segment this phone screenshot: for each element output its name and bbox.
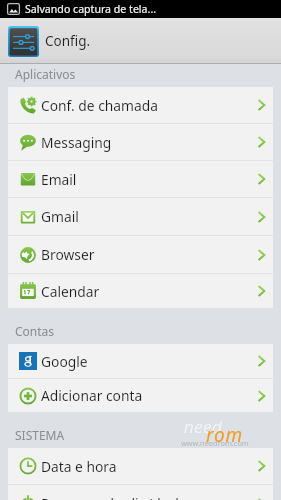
button[interactable]: Email bbox=[8, 161, 273, 197]
button[interactable]: Gmail bbox=[8, 198, 273, 235]
button[interactable]: Google bbox=[8, 344, 273, 378]
staticText: www.needrom.com bbox=[181, 438, 249, 448]
staticText: Messaging bbox=[41, 133, 112, 152]
staticText: need bbox=[184, 415, 223, 438]
button[interactable]: Messaging bbox=[8, 124, 273, 160]
staticText: Google bbox=[41, 352, 88, 371]
staticText: SISTEMA bbox=[15, 427, 65, 443]
staticText: Calendar bbox=[41, 282, 100, 301]
staticText: Adicionar conta bbox=[41, 386, 143, 405]
staticText: rom bbox=[206, 422, 243, 448]
staticText: Aplicativos bbox=[15, 66, 76, 82]
button[interactable]: Data e hora bbox=[8, 448, 273, 484]
staticText: Data e hora bbox=[41, 457, 117, 476]
button[interactable]: Conf. de chamada bbox=[8, 87, 273, 123]
staticText: Salvando captura de tela... bbox=[25, 2, 157, 16]
staticText: Gmail bbox=[41, 207, 79, 226]
staticText: Programador lig/desl bbox=[41, 494, 179, 500]
staticText: Email bbox=[41, 170, 77, 189]
staticText: Contas bbox=[15, 323, 55, 339]
staticText: Conf. de chamada bbox=[41, 96, 158, 115]
staticText: Config. bbox=[45, 32, 91, 50]
button[interactable]: Browser bbox=[8, 236, 273, 273]
staticText: Browser bbox=[41, 245, 95, 264]
button[interactable]: Calendar bbox=[8, 274, 273, 308]
button[interactable]: Programador lig/desl bbox=[8, 485, 273, 500]
button[interactable]: Adicionar conta bbox=[8, 379, 273, 412]
